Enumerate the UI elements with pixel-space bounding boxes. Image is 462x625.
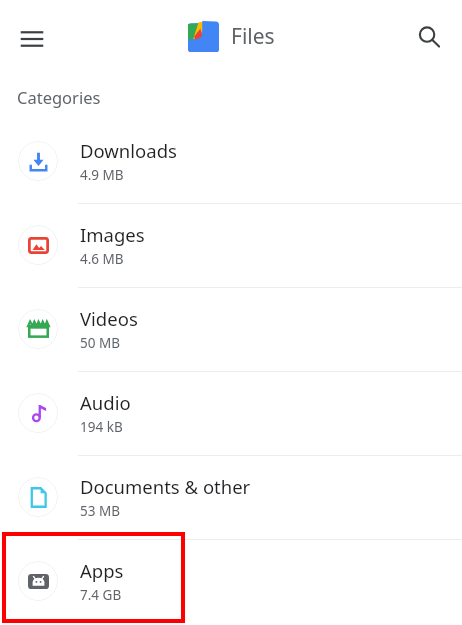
staticText: 7.4 GB: [80, 586, 122, 604]
staticText: Videos: [80, 306, 138, 331]
button[interactable]: Downloads: [0, 119, 462, 203]
staticText: Apps: [80, 558, 124, 583]
staticText: Images: [80, 222, 145, 247]
button[interactable]: Open navigation menu: [10, 17, 54, 61]
button[interactable]: Images: [0, 203, 462, 287]
button[interactable]: Audio: [0, 371, 462, 455]
staticText: 4.6 MB: [80, 250, 124, 268]
staticText: 50 MB: [80, 334, 120, 352]
button[interactable]: Videos: [0, 287, 462, 371]
staticText: Categories: [17, 86, 101, 108]
button[interactable]: Apps: [0, 539, 462, 623]
button[interactable]: Documents & other: [0, 455, 462, 539]
staticText: 53 MB: [80, 502, 120, 520]
button[interactable]: Search: [407, 15, 451, 59]
staticText: Documents & other: [80, 474, 251, 499]
staticText: 4.9 MB: [80, 166, 124, 184]
staticText: Audio: [80, 390, 131, 415]
staticText: Downloads: [80, 138, 177, 163]
staticText: Files: [231, 22, 275, 51]
staticText: 194 kB: [80, 418, 123, 436]
